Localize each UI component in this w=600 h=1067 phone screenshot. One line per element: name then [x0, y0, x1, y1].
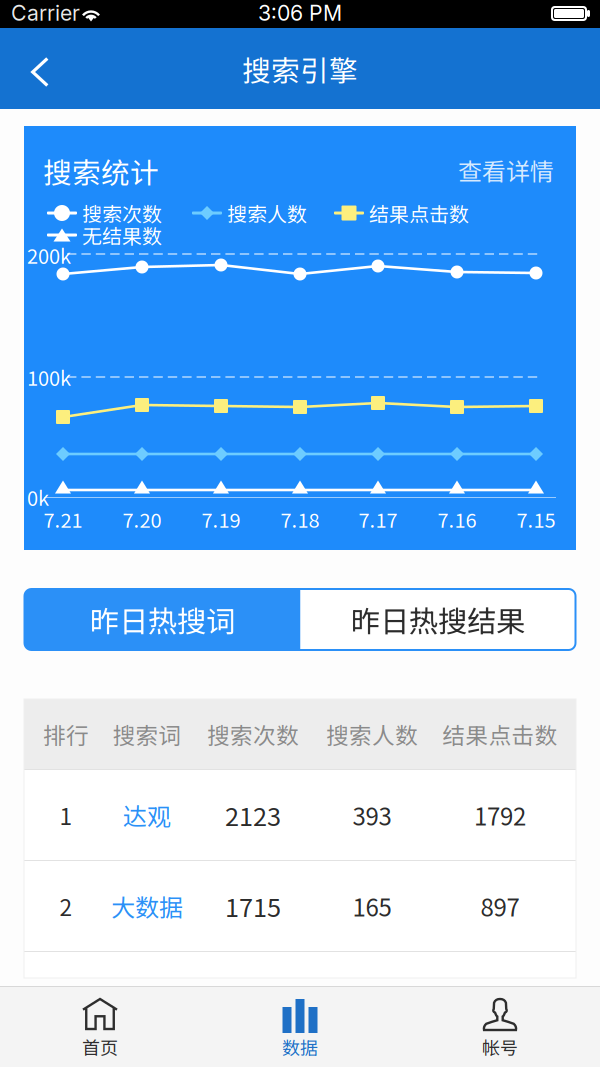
staticText: 大数据 — [111, 889, 183, 923]
staticText: Carrier — [11, 0, 80, 26]
staticText: 7.21 — [43, 504, 82, 533]
staticText: 1 — [59, 799, 72, 831]
staticText: 搜索统计 — [43, 150, 159, 192]
staticText: 查看详情 — [458, 153, 554, 187]
staticText: 结果点击数 — [369, 198, 469, 227]
staticText: 2123 — [225, 797, 281, 833]
staticText: 达观 — [123, 798, 171, 832]
button[interactable]: 帐号 — [400, 986, 600, 1067]
staticText: 排行 — [43, 718, 89, 750]
staticText: 结果点击数 — [442, 718, 557, 750]
staticText: 1715 — [225, 888, 281, 924]
staticText: 搜索词 — [112, 718, 181, 750]
staticText: 7.18 — [280, 504, 319, 533]
button[interactable]: 昨日热搜词 — [24, 589, 300, 650]
staticText: 1792 — [474, 798, 526, 832]
staticText: 昨日热搜结果 — [351, 598, 525, 641]
staticText: 搜索引擎 — [242, 48, 358, 90]
staticText: 搜索人数 — [227, 198, 307, 227]
button[interactable]: 数据 — [200, 986, 400, 1067]
staticText: 7.19 — [201, 504, 240, 533]
staticText: 897 — [480, 889, 519, 923]
staticText: 7.16 — [437, 504, 476, 533]
staticText: 昨日热搜词 — [90, 598, 235, 641]
staticText: 帐号 — [482, 1034, 518, 1060]
staticText: 无结果数 — [82, 220, 162, 249]
staticText: 7.17 — [358, 504, 397, 533]
button[interactable]: Back — [11, 43, 69, 101]
staticText: 7.20 — [122, 504, 161, 533]
staticText: 393 — [352, 798, 391, 832]
button[interactable]: 首页 — [0, 986, 200, 1067]
button[interactable]: 昨日热搜结果 — [300, 589, 575, 650]
staticText: 搜索人数 — [326, 718, 418, 750]
staticText: 搜索次数 — [207, 718, 299, 750]
button[interactable]: 查看详情 — [424, 153, 554, 187]
staticText: 100k — [27, 362, 71, 391]
staticText: 3:06 PM — [258, 0, 342, 26]
staticText: 0k — [27, 482, 49, 511]
staticText: 2 — [59, 890, 72, 922]
staticText: 165 — [352, 889, 391, 923]
staticText: 7.15 — [516, 504, 555, 533]
staticText: 首页 — [82, 1034, 118, 1060]
staticText: 200k — [27, 240, 71, 269]
staticText: 搜索次数 — [82, 198, 162, 227]
staticText: 数据 — [282, 1034, 318, 1060]
